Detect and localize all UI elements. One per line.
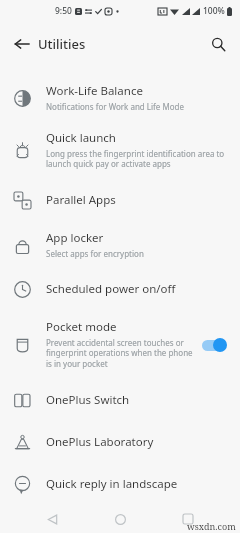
staticText: App locker xyxy=(46,230,104,246)
button[interactable]: OnePlus Laboratory xyxy=(0,421,240,463)
button[interactable]: Quick launch xyxy=(0,121,240,179)
staticText: Notifications for Work and Life Mode xyxy=(46,101,184,112)
staticText: Scheduled power on/off xyxy=(46,281,176,297)
button[interactable]: Back xyxy=(6,28,38,60)
staticText: Parallel Apps xyxy=(46,192,116,208)
button[interactable]: Recents xyxy=(172,505,204,533)
button[interactable]: Scheduled power on/off xyxy=(0,268,240,310)
staticText: 9:50 xyxy=(55,5,72,17)
staticText: Long press the fingerprint identificatio… xyxy=(46,148,230,170)
staticText: Select apps for encryption xyxy=(46,248,144,259)
button[interactable]: Search xyxy=(202,28,234,60)
button[interactable]: App locker xyxy=(0,221,240,268)
staticText: OnePlus Switch xyxy=(46,392,130,408)
button[interactable]: Home xyxy=(104,505,136,533)
staticText: wsxdn.com xyxy=(187,520,236,532)
staticText: OnePlus Laboratory xyxy=(46,434,154,450)
button[interactable]: Back xyxy=(36,505,68,533)
staticText: Quick launch xyxy=(46,130,116,146)
staticText: Work-Life Balance xyxy=(46,83,143,99)
button[interactable]: Quick reply in landscape xyxy=(0,463,240,505)
staticText: Utilities xyxy=(38,35,86,53)
staticText: 100% xyxy=(203,5,225,17)
button[interactable]: Pocket mode toggle xyxy=(200,336,230,354)
button[interactable]: Work-Life Balance xyxy=(0,74,240,121)
staticText: Quick reply in landscape xyxy=(46,476,178,492)
staticText: Prevent accidental screen touches or fin… xyxy=(46,337,194,370)
button[interactable]: Parallel Apps xyxy=(0,179,240,221)
staticText: Pocket mode xyxy=(46,319,117,335)
button[interactable]: OnePlus Switch xyxy=(0,379,240,421)
button[interactable]: Pocket mode xyxy=(0,310,240,379)
